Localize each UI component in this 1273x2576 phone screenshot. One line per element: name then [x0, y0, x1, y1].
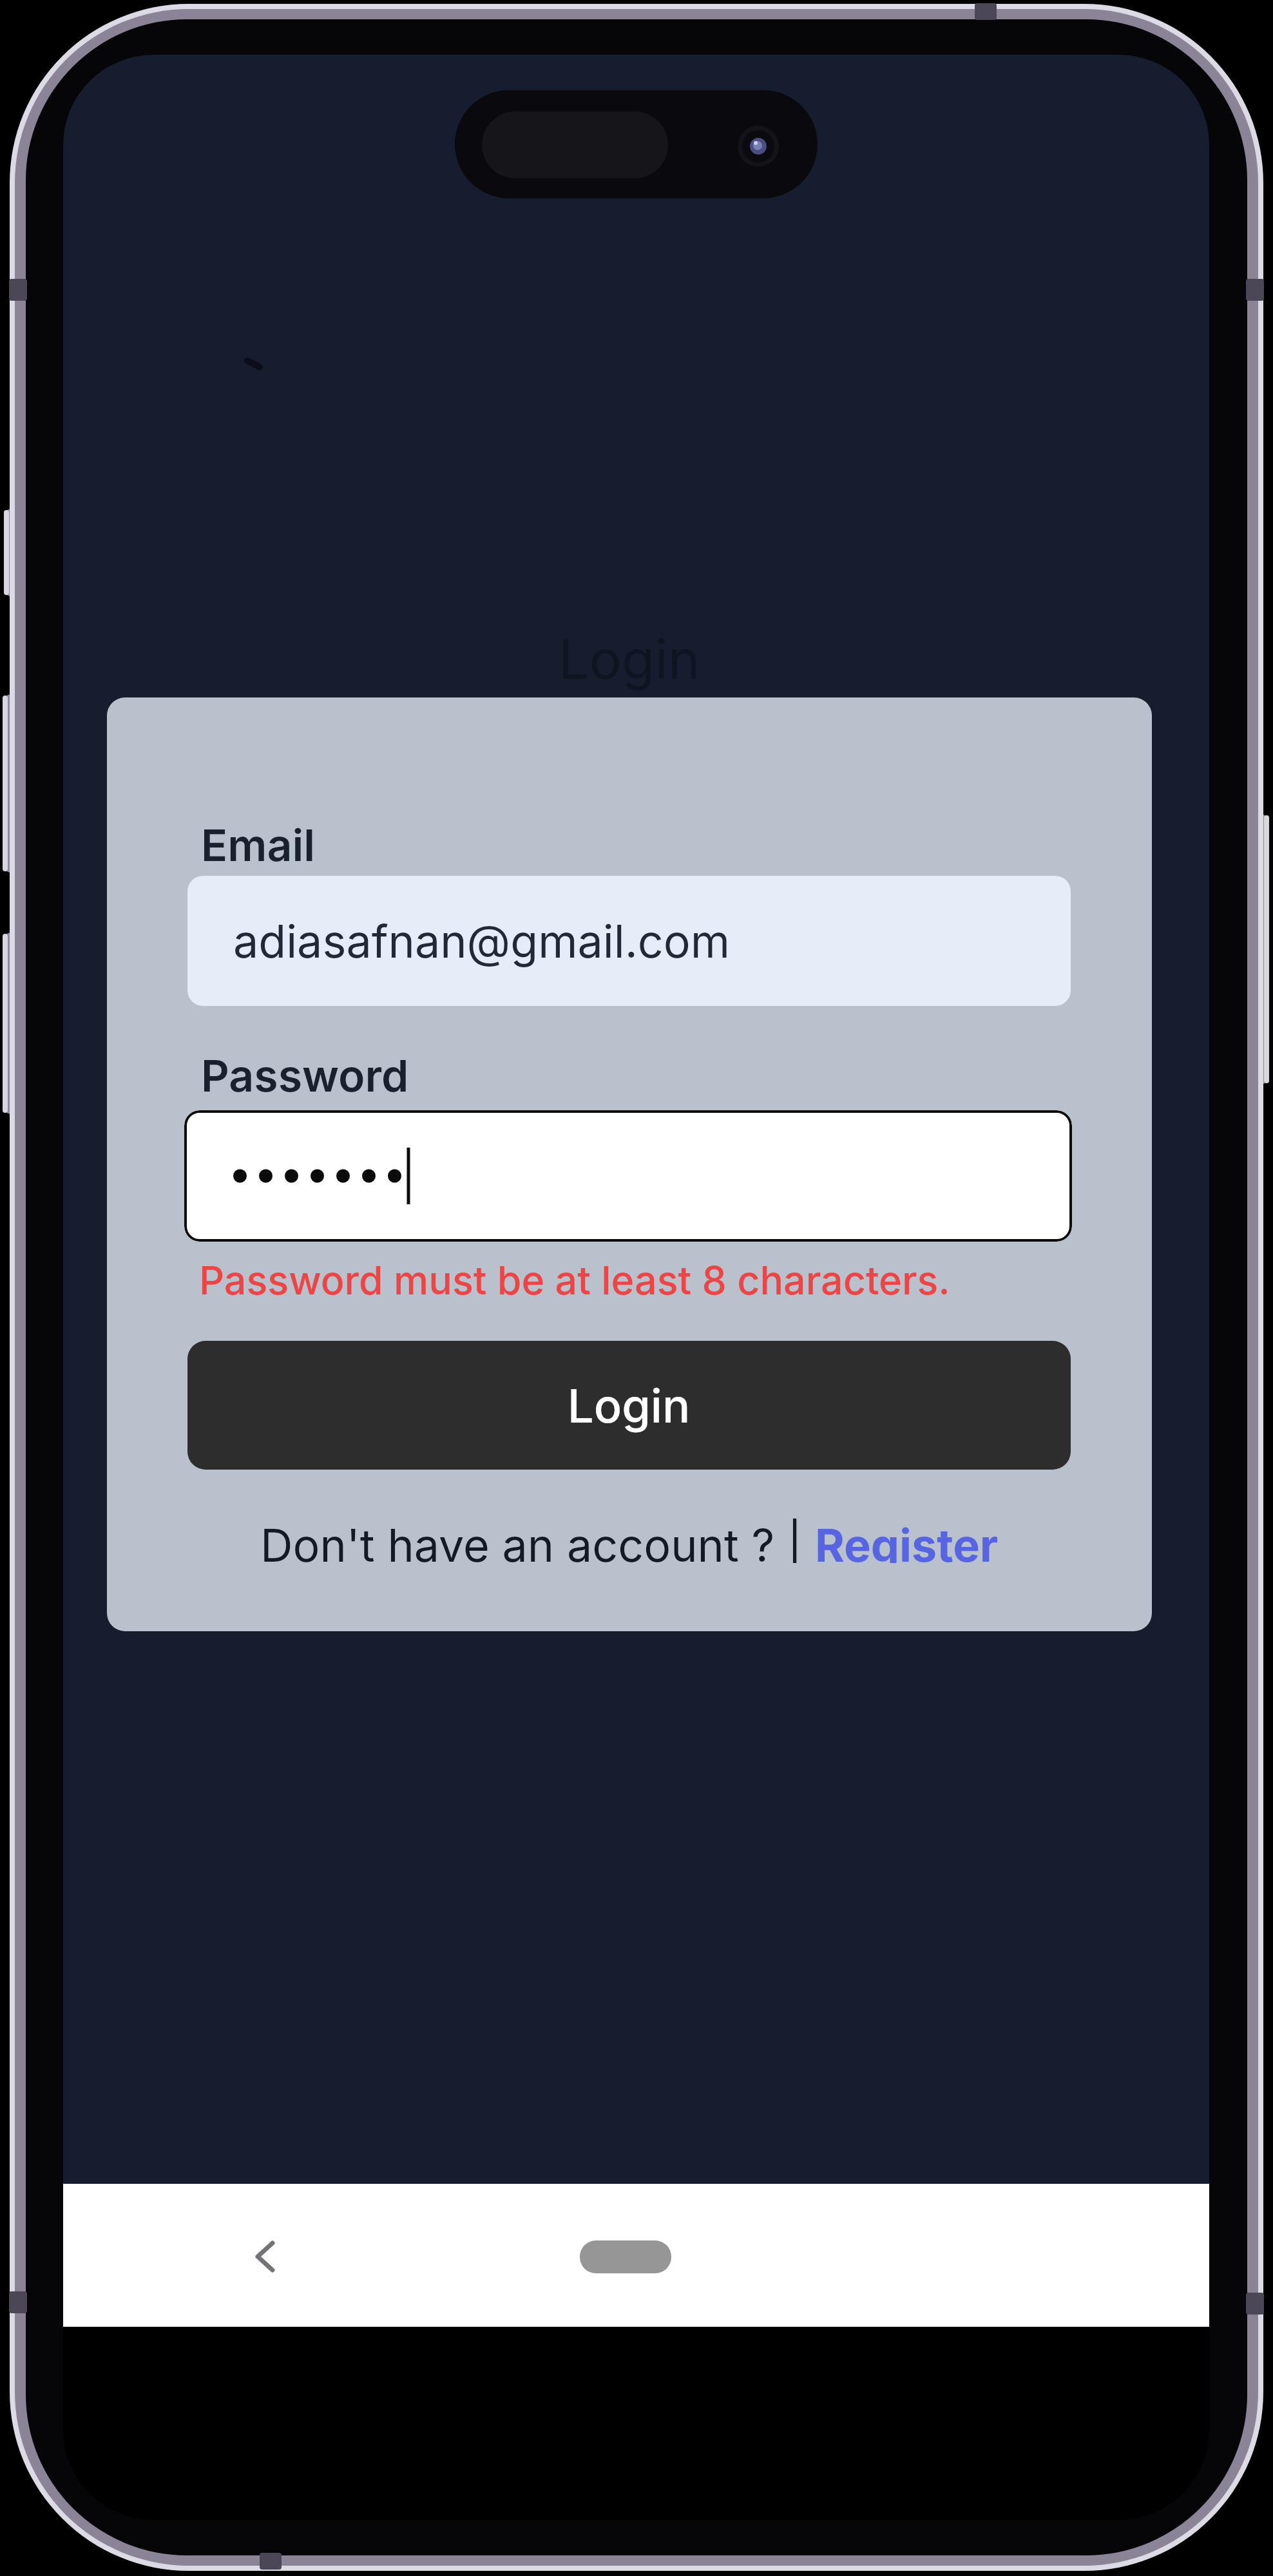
- staticText: Register: [815, 1518, 999, 1563]
- button[interactable]: Login: [187, 1341, 1071, 1470]
- button[interactable]: [184, 1110, 1072, 1242]
- staticText: Password must be at least 8 characters.: [199, 1256, 950, 1302]
- staticText: Email: [201, 819, 316, 864]
- staticText: Login: [568, 1378, 691, 1434]
- button[interactable]: [242, 2235, 287, 2280]
- staticText: Password: [201, 1049, 409, 1094]
- button[interactable]: adiasafnan@gmail.com: [187, 876, 1071, 1006]
- staticText: Don't have an account ? |: [260, 1518, 815, 1563]
- staticText: adiasafnan@gmail.com: [233, 914, 731, 969]
- staticText: Login: [559, 627, 700, 692]
- button[interactable]: Register: [815, 1518, 999, 1563]
